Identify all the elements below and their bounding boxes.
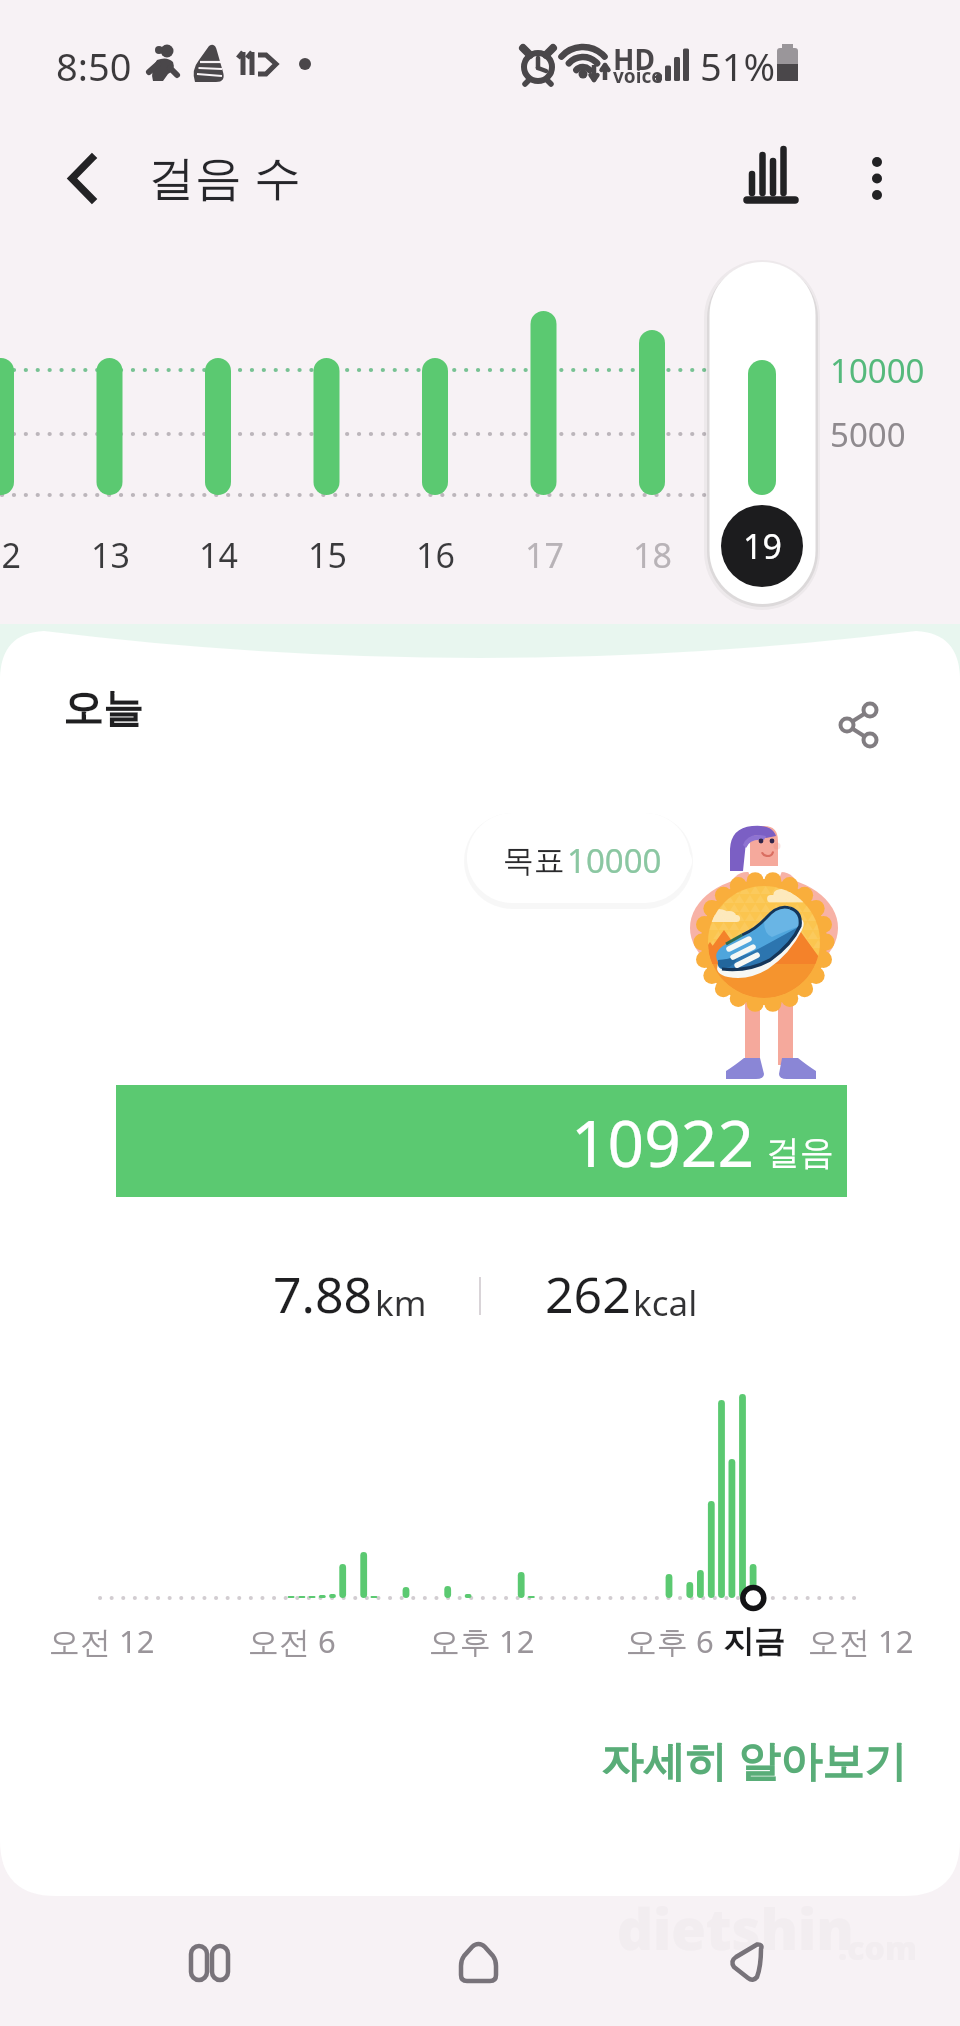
button[interactable]: Day 19 [710, 262, 814, 604]
staticText: 오후 12 [429, 1620, 535, 1662]
staticText: 오후 6 [626, 1620, 714, 1662]
button[interactable]: Chart view [735, 143, 803, 211]
button[interactable]: 자세히 알아보기 [580, 1712, 920, 1810]
staticText: kcal [633, 1279, 698, 1327]
button[interactable]: More options [843, 143, 911, 211]
staticText: 8:50 [56, 40, 132, 92]
staticText: 5000 [830, 412, 906, 457]
button[interactable]: Back [687, 1918, 807, 2008]
button[interactable]: Home [419, 1918, 539, 2008]
staticText: 목표 [503, 841, 565, 880]
button[interactable]: Day 14 [166, 262, 270, 604]
staticText: 7.88 [273, 1260, 373, 1328]
staticText: 오전 12 [808, 1620, 914, 1662]
staticText: 걸음 수 [148, 144, 302, 208]
button[interactable]: Recent apps [150, 1918, 270, 2008]
button[interactable]: Share [800, 678, 894, 772]
staticText: 15 [308, 532, 347, 578]
staticText: 오전 6 [248, 1620, 336, 1662]
staticText: 17 [525, 532, 564, 578]
staticText: 19 [743, 523, 782, 569]
button[interactable]: Day 12 [0, 262, 53, 604]
staticText: voice [613, 63, 663, 89]
button[interactable]: Back [40, 130, 126, 216]
staticText: 10000 [830, 348, 925, 393]
staticText: km [375, 1279, 427, 1327]
staticText: 걸음 [766, 1131, 834, 1174]
staticText: 10922 [571, 1099, 755, 1186]
staticText: 12 [0, 532, 21, 578]
button[interactable]: 10922 steps [116, 1085, 847, 1197]
staticText: 지금 [723, 1622, 785, 1661]
staticText: 오전 12 [49, 1620, 155, 1662]
staticText: 16 [416, 532, 455, 578]
staticText: 262 [545, 1260, 631, 1328]
button[interactable]: Day 13 [58, 262, 162, 604]
button[interactable]: Day 17 [492, 262, 596, 604]
button[interactable]: Day 16 [383, 262, 487, 604]
staticText: HD [613, 40, 655, 78]
staticText: 10000 [567, 838, 662, 883]
staticText: dietshin [617, 1890, 854, 1966]
staticText: 18 [633, 532, 672, 578]
staticText: 14 [199, 532, 238, 578]
button[interactable]: Day 18 [600, 262, 704, 604]
staticText: 51% [700, 40, 776, 92]
staticText: 오늘 [63, 683, 143, 733]
staticText: 자세히 알아보기 [601, 1731, 906, 1788]
staticText: 13 [91, 532, 130, 578]
button[interactable]: Day 15 [275, 262, 379, 604]
